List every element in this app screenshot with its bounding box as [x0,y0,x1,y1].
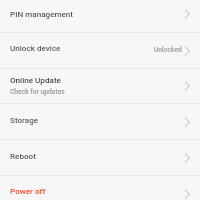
button[interactable]: Online Update [0,69,200,103]
staticText: PIN management [10,9,74,18]
button[interactable]: Power off [0,176,200,200]
staticText: Reboot [10,151,36,160]
other: Open [185,115,194,129]
other: Open [185,79,194,93]
staticText: Power off [10,186,46,195]
other: Open [185,7,194,21]
button[interactable]: Reboot [0,140,200,175]
staticText: Check for updates [10,88,65,96]
button[interactable]: Unlock device [0,33,200,68]
staticText: Unlocked [154,46,182,54]
other: Open [185,151,194,165]
staticText: Storage [10,115,39,124]
other: Open [185,187,194,200]
button[interactable]: Storage [0,104,200,139]
other: Open [185,44,194,58]
staticText: Online Update [10,75,61,84]
staticText: Unlock device [10,43,61,52]
button[interactable]: PIN management [0,0,200,32]
